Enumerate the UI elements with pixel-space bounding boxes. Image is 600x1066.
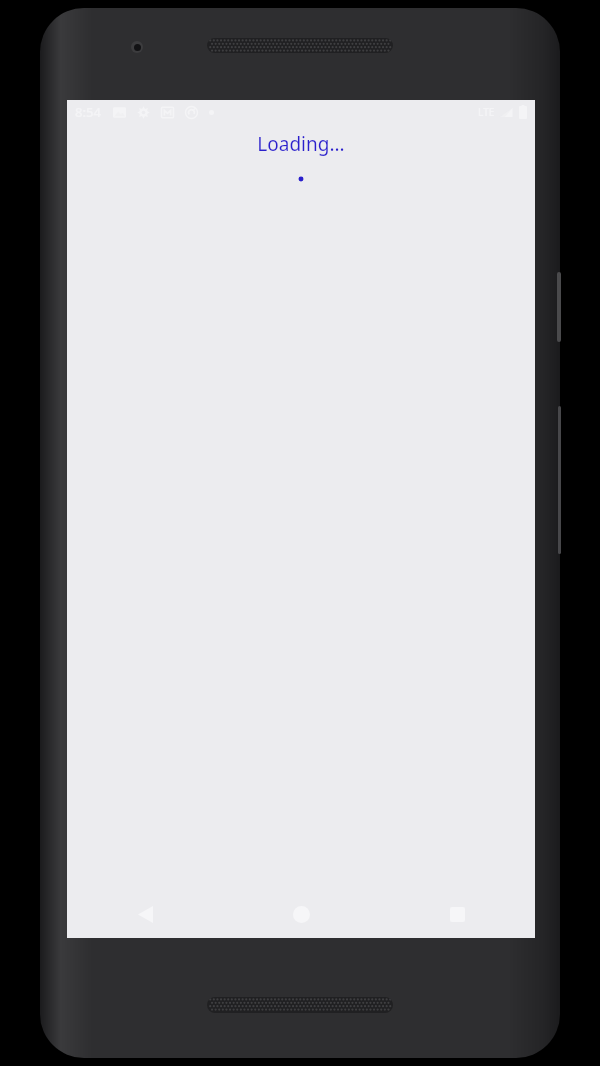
staticText: Loading... [257, 131, 345, 157]
